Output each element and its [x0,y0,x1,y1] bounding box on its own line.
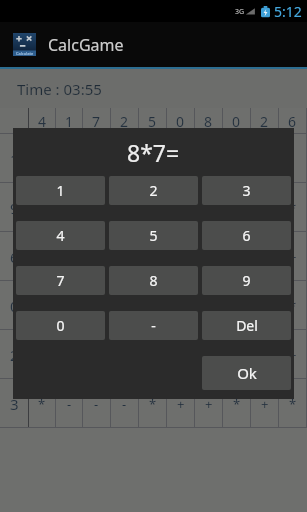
button[interactable]: + [251,379,278,428]
button[interactable]: - [56,232,82,281]
staticText: * [289,297,297,315]
button[interactable]: - [111,379,138,428]
staticText: 3 [10,394,19,414]
button[interactable]: + [223,330,250,379]
button[interactable]: Ok [202,356,291,390]
button[interactable]: * [111,281,138,330]
button[interactable]: + [29,134,55,183]
button[interactable]: 2 [251,108,278,134]
button[interactable]: * [139,379,166,428]
button[interactable]: * [29,232,55,281]
button[interactable]: + [139,232,166,281]
button[interactable]: + [223,183,250,232]
button[interactable]: 8 [195,108,222,134]
button[interactable]: 1 [56,108,82,134]
button[interactable]: * [279,183,306,232]
staticText: - [67,395,72,413]
button[interactable]: 4 [29,108,55,134]
button[interactable]: - [109,311,198,340]
button[interactable]: - [195,232,222,281]
button[interactable]: 8 [109,266,198,295]
button[interactable]: - [29,183,55,232]
staticText: + [261,297,269,315]
button[interactable]: 5 [109,221,198,250]
button[interactable]: - [83,379,110,428]
button[interactable]: + [56,330,82,379]
button[interactable]: - [56,379,82,428]
button[interactable]: 7 [83,108,110,134]
button[interactable]: 9 [202,266,291,295]
button[interactable]: - [56,281,82,330]
button[interactable]: + [195,183,222,232]
button[interactable]: * [279,379,306,428]
button[interactable]: - [195,281,222,330]
staticText: 7 [92,112,101,131]
button[interactable]: 5 [139,108,166,134]
button[interactable]: 7 [16,266,105,295]
button[interactable]: - [251,183,278,232]
button[interactable]: - [29,281,55,330]
staticText: 2 [149,181,158,200]
button[interactable]: - [83,281,110,330]
button[interactable]: - [195,330,222,379]
button[interactable]: 2 [109,176,198,205]
button[interactable]: + [139,183,166,232]
button[interactable]: + [279,330,306,379]
staticText: - [206,346,211,364]
button[interactable]: - [139,134,166,183]
button[interactable]: + [111,330,138,379]
button[interactable]: * [29,379,55,428]
button[interactable]: * [223,379,250,428]
button[interactable]: + [111,134,138,183]
button[interactable]: * [223,232,250,281]
button[interactable]: - [83,330,110,379]
button[interactable]: - [279,134,306,183]
button[interactable]: 2 [111,108,138,134]
button[interactable]: + [279,232,306,281]
button[interactable]: * [279,281,306,330]
button[interactable]: 0 [223,108,250,134]
staticText: * [149,395,157,413]
button[interactable]: - [223,134,250,183]
button[interactable]: - [167,183,194,232]
button[interactable]: * [83,134,110,183]
button[interactable]: - [139,281,166,330]
staticText: * [233,248,241,266]
button[interactable]: 1 [16,176,105,205]
staticText: 0 [232,112,241,131]
button[interactable]: - [56,134,82,183]
button[interactable]: - [111,232,138,281]
button[interactable]: 6 [202,221,291,250]
button[interactable]: - [251,330,278,379]
button[interactable]: + [83,232,110,281]
button[interactable]: Del [202,311,291,340]
button[interactable]: * [195,134,222,183]
button[interactable]: CalcGame app icon [13,33,36,56]
button[interactable]: + [195,379,222,428]
button[interactable]: 6 [279,108,306,134]
button[interactable]: + [167,281,194,330]
button[interactable]: 3 [202,176,291,205]
button[interactable]: 0 [167,108,194,134]
button[interactable]: + [251,134,278,183]
button[interactable]: * [111,183,138,232]
button[interactable]: + [139,330,166,379]
button[interactable]: + [251,232,278,281]
button[interactable]: + [29,330,55,379]
button[interactable]: 0 [16,311,105,340]
staticText: - [150,150,155,168]
button[interactable]: + [56,183,82,232]
button[interactable]: + [167,330,194,379]
button[interactable]: + [251,281,278,330]
button[interactable]: + [167,379,194,428]
button[interactable]: + [167,134,194,183]
button[interactable]: + [83,183,110,232]
staticText: - [94,297,99,315]
button[interactable]: 4 [16,221,105,250]
button[interactable]: + [167,232,194,281]
button[interactable]: + [223,281,250,330]
